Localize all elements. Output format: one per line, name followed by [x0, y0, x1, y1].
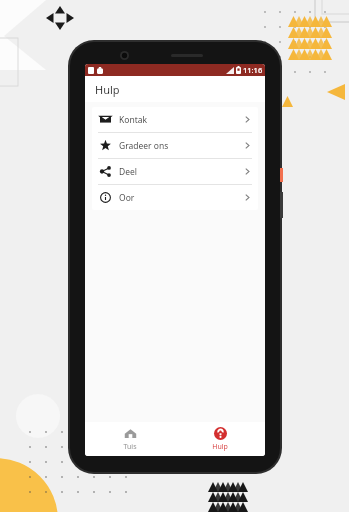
button[interactable]: Kontak [92, 107, 258, 132]
button[interactable]: Oor [92, 185, 258, 210]
staticText: 11:16 [243, 65, 263, 75]
staticText: Oor [119, 192, 135, 204]
staticText: Gradeer ons [119, 140, 169, 152]
button[interactable]: Hulp [175, 422, 265, 456]
button[interactable]: Deel [92, 159, 258, 184]
staticText: Hulp [95, 82, 120, 97]
button[interactable]: Tuis [85, 422, 175, 456]
staticText: Deel [119, 166, 137, 178]
button[interactable]: Gradeer ons [92, 133, 258, 158]
staticText: Hulp [212, 442, 228, 452]
staticText: Tuis [123, 442, 137, 452]
staticText: Kontak [119, 114, 148, 126]
